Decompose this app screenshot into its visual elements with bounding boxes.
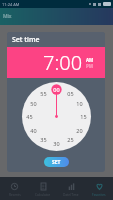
staticText: 35 bbox=[40, 136, 47, 143]
button[interactable]: Recents bbox=[0, 177, 29, 200]
staticText: 40 bbox=[30, 127, 37, 134]
button[interactable]: Favorites bbox=[85, 177, 113, 200]
staticText: 45 bbox=[26, 113, 33, 120]
staticText: PM bbox=[86, 63, 94, 69]
staticText: 11:24 AM bbox=[2, 2, 20, 7]
button[interactable]: SET bbox=[44, 157, 69, 167]
staticText: Date/Time bbox=[63, 193, 79, 197]
staticText: 15 bbox=[80, 113, 87, 120]
staticText: Recents bbox=[9, 193, 21, 197]
staticText: Favorites bbox=[92, 193, 106, 197]
staticText: AM bbox=[86, 57, 94, 63]
staticText: SET bbox=[52, 159, 61, 166]
staticText: Mix bbox=[3, 13, 12, 20]
staticText: 50 bbox=[30, 100, 37, 107]
staticText: 10 bbox=[76, 100, 83, 107]
button[interactable]: Date/Time bbox=[57, 177, 85, 200]
button[interactable]: Calculator bbox=[29, 177, 57, 200]
staticText: 55 bbox=[40, 90, 47, 97]
staticText: 05 bbox=[67, 90, 74, 97]
staticText: 20 bbox=[76, 127, 83, 134]
staticText: 00 bbox=[53, 86, 60, 93]
staticText: 30 bbox=[53, 140, 60, 147]
staticText: 25 bbox=[67, 136, 74, 143]
staticText: 7:00 bbox=[43, 49, 83, 76]
staticText: Set time bbox=[12, 35, 40, 45]
staticText: Calculator bbox=[35, 193, 51, 197]
